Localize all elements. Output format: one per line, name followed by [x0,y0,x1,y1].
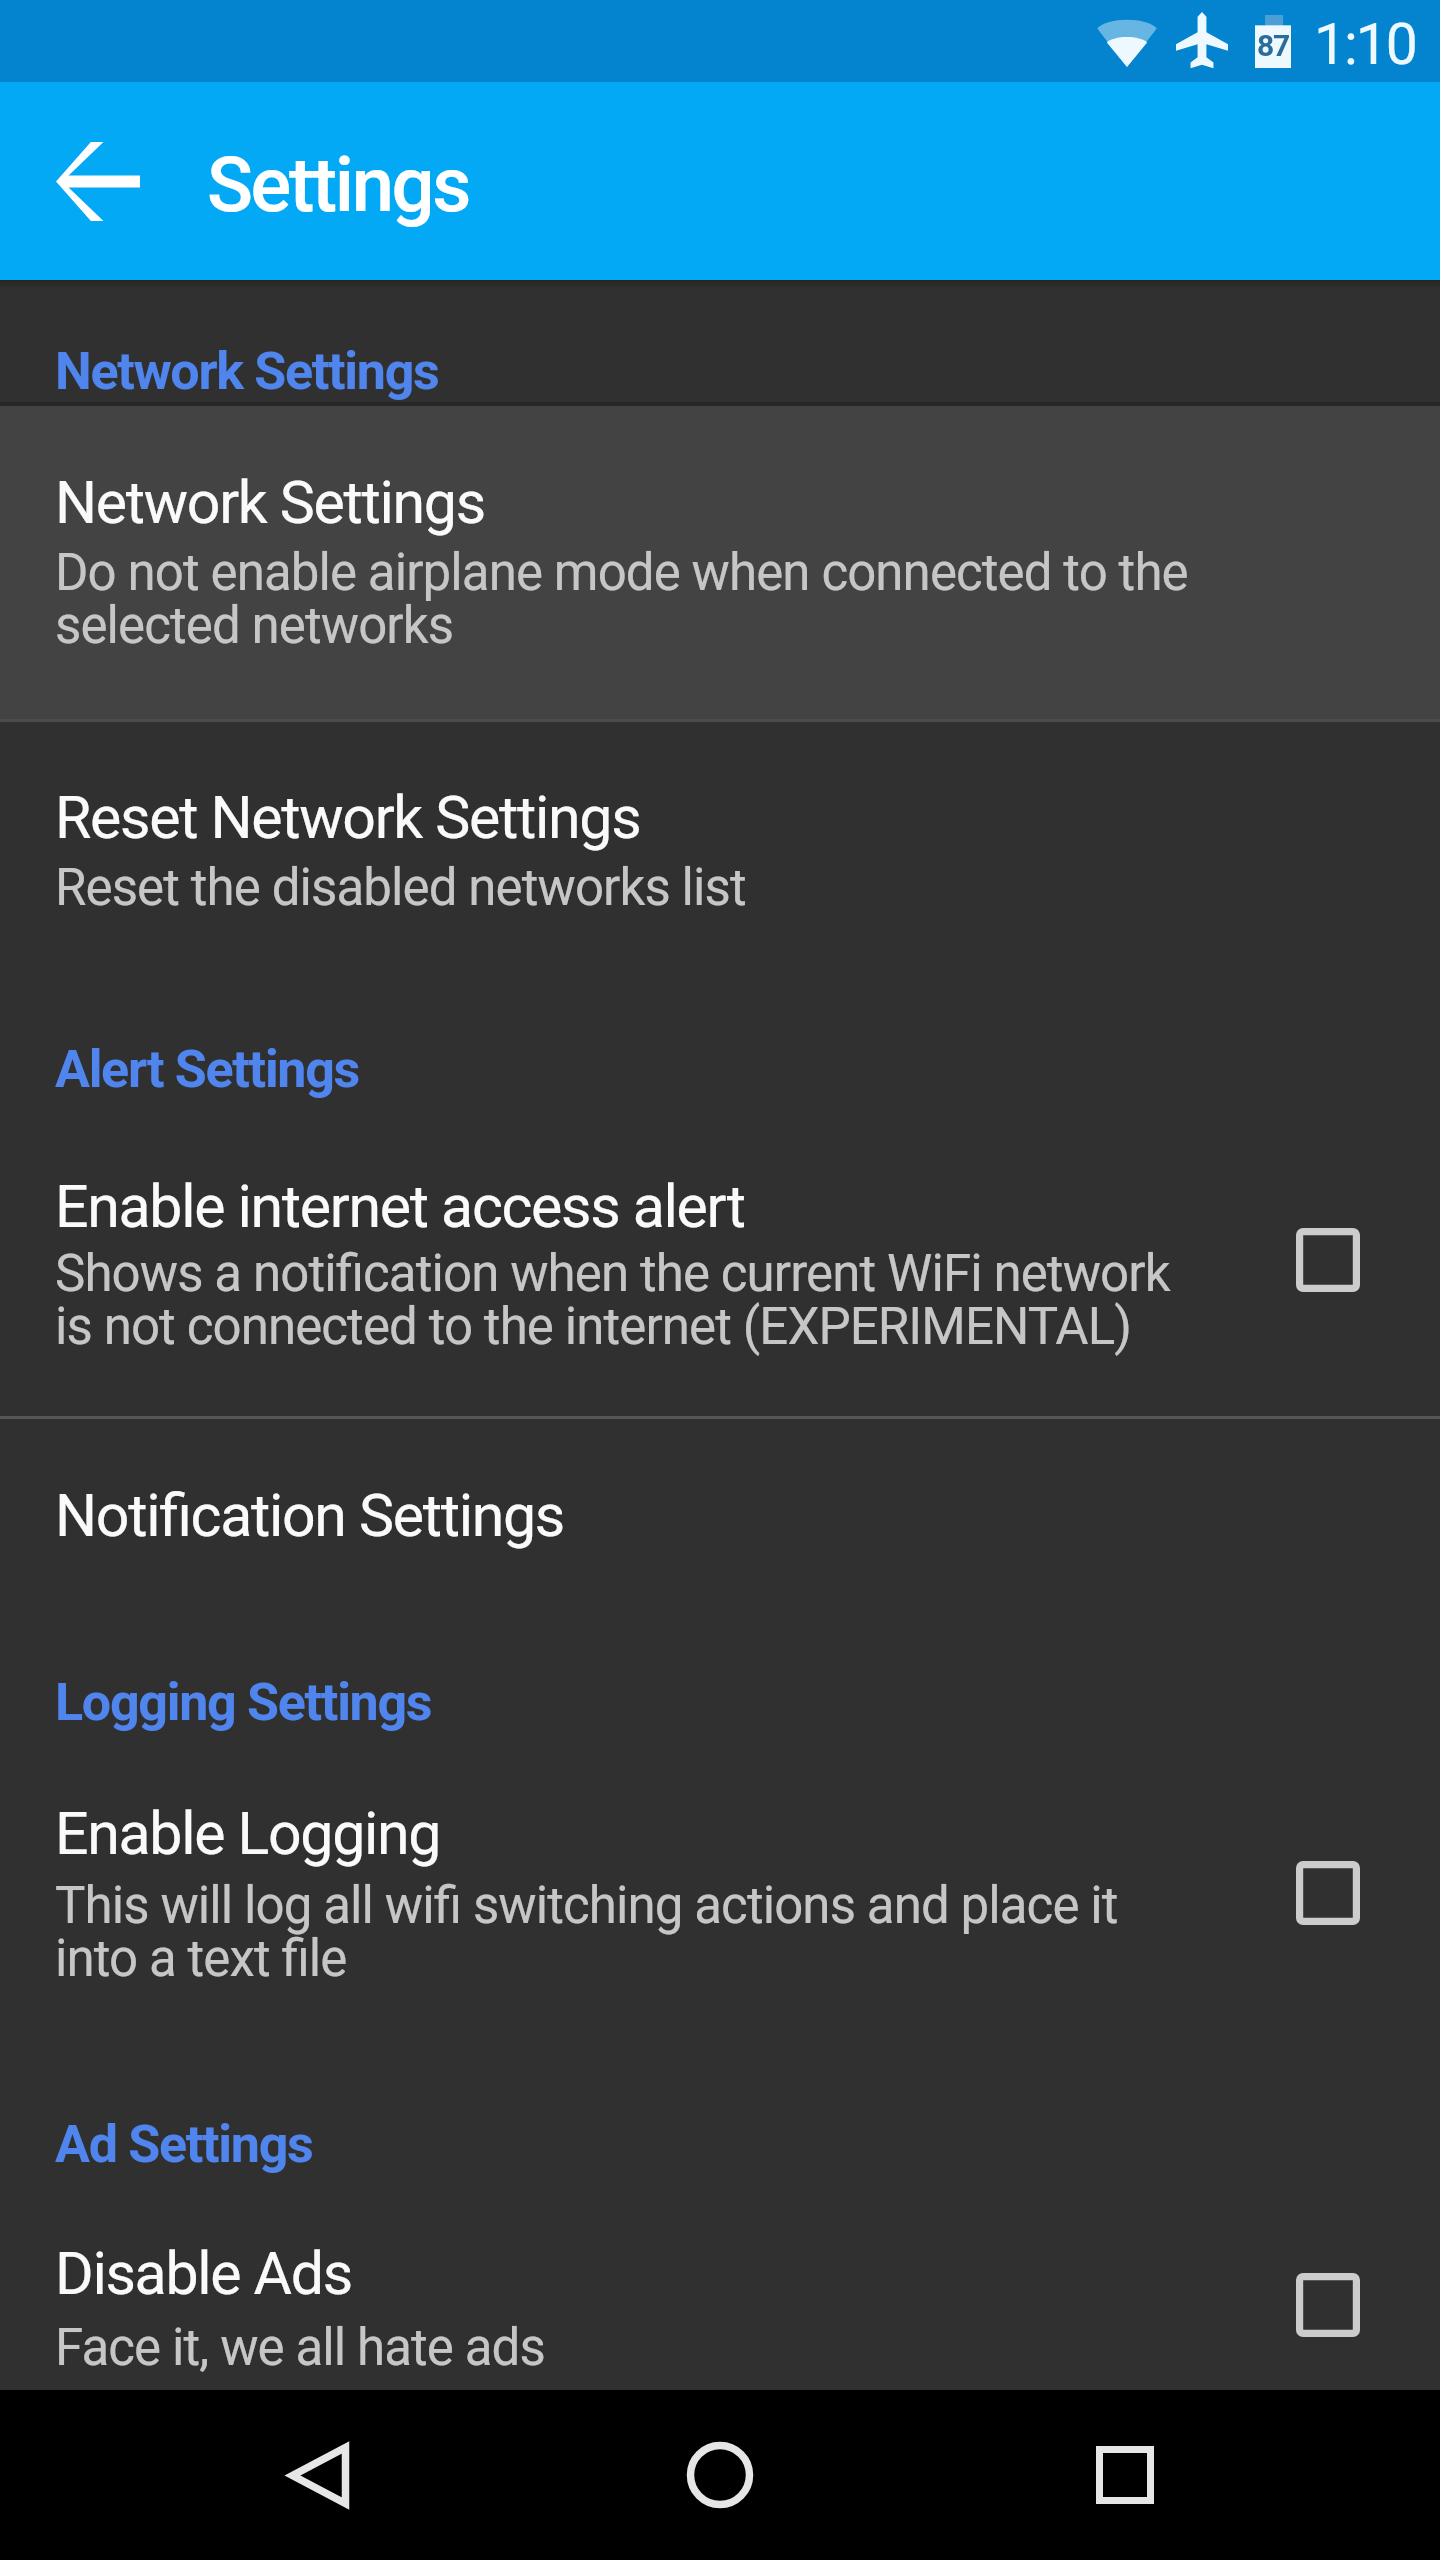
button[interactable]: Notification Settings [0,1420,1440,1628]
button[interactable]: Home [625,2390,815,2560]
button[interactable]: Toggle setting [1266,1831,1390,1955]
button[interactable]: Reset Network Settings [0,726,1440,974]
button[interactable]: Recent apps [1030,2390,1220,2560]
staticText: Do not enable airplane mode when connect… [55,543,1188,655]
staticText: Logging Settings [55,1672,432,1733]
staticText: Ad Settings [55,2114,313,2175]
staticText: Disable Ads [55,2239,352,2308]
button[interactable]: Navigate up [0,82,196,280]
staticText: Shows a notification when the current Wi… [55,1244,1170,1356]
staticText: Enable Logging [55,1799,441,1868]
staticText: Notification Settings [55,1481,565,1550]
button[interactable]: Network Settings [0,404,1440,722]
staticText: Settings [207,140,470,229]
staticText: Alert Settings [55,1039,360,1100]
button[interactable]: Back [224,2390,414,2560]
staticText: Face it, we all hate ads [55,2318,545,2378]
button[interactable]: Enable Logging [0,1752,1440,2046]
button[interactable]: Enable internet access alert [0,1122,1440,1416]
button[interactable]: Disable Ads [0,2192,1440,2390]
button[interactable]: Toggle setting [1266,2243,1390,2367]
staticText: Reset the disabled networks list [55,858,746,918]
staticText: 1:10 [1314,11,1416,78]
button[interactable]: Toggle setting [1266,1198,1390,1322]
staticText: Reset Network Settings [55,783,641,852]
staticText: 87 [1257,28,1290,63]
staticText: Network Settings [55,341,439,402]
staticText: Enable internet access alert [55,1172,745,1241]
staticText: Network Settings [55,468,485,537]
staticText: This will log all wifi switching actions… [55,1876,1118,1988]
